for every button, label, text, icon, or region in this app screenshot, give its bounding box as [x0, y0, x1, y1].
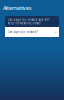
staticText: Can signs be rotated? — [7, 30, 37, 34]
staticText: × — [54, 29, 56, 35]
staticText: Can a sign be rotated and still keep its… — [7, 18, 49, 25]
staticText: Alternatives — [3, 4, 32, 12]
